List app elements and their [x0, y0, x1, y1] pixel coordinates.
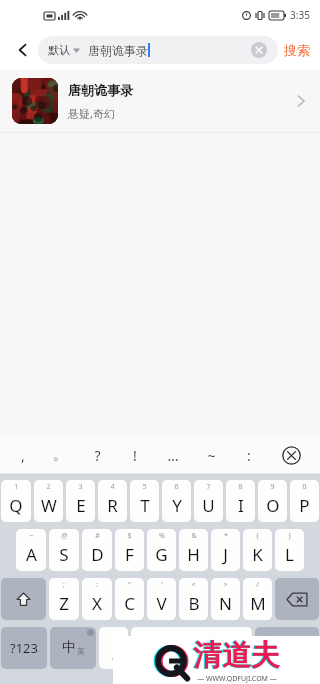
- staticText: H: [187, 543, 200, 566]
- staticText: R: [107, 494, 118, 517]
- button[interactable]: <: [179, 578, 208, 620]
- staticText: U: [202, 494, 215, 517]
- button[interactable]: 8: [226, 480, 255, 522]
- staticText: 道: [221, 637, 250, 674]
- staticText: 0: [302, 482, 307, 492]
- staticText: <: [191, 580, 196, 590]
- staticText: Q: [9, 494, 23, 517]
- staticText: 清: [193, 637, 222, 674]
- staticText: J: [223, 543, 228, 566]
- staticText: ,: [21, 446, 25, 465]
- button[interactable]: ': [147, 578, 176, 620]
- button[interactable]: *: [211, 529, 240, 571]
- button[interactable]: Space: [131, 627, 252, 669]
- button[interactable]: Shift: [1, 578, 46, 620]
- staticText: P: [299, 494, 310, 517]
- button[interactable]: ;: [49, 578, 79, 620]
- staticText: ': [161, 580, 163, 590]
- staticText: B: [188, 592, 200, 615]
- staticText: :: [247, 446, 251, 465]
- button[interactable]: 3: [66, 480, 95, 522]
- staticText: 悬疑,奇幻: [68, 106, 115, 121]
- staticText: I: [238, 494, 244, 517]
- staticText: V: [156, 592, 167, 615]
- button[interactable]: $: [115, 529, 144, 571]
- staticText: T: [140, 494, 150, 517]
- staticText: …: [167, 446, 179, 465]
- button[interactable]: /: [243, 578, 272, 620]
- button[interactable]: >: [211, 578, 240, 620]
- staticText: 夫: [250, 637, 279, 674]
- staticText: 3: [78, 482, 83, 492]
- button[interactable]: %: [147, 529, 176, 571]
- button[interactable]: 6: [162, 480, 191, 522]
- button[interactable]: …: [154, 436, 192, 474]
- staticText: 唐朝诡事录: [88, 43, 148, 58]
- button[interactable]: ?123: [1, 627, 47, 669]
- staticText: C: [124, 592, 135, 615]
- button[interactable]: 1: [1, 480, 31, 522]
- button[interactable]: @: [49, 529, 79, 571]
- staticText: 英: [77, 646, 85, 656]
- button[interactable]: ~: [192, 436, 230, 474]
- staticText: 4: [110, 482, 115, 492]
- staticText: 6: [174, 482, 179, 492]
- staticText: 。: [53, 446, 67, 464]
- button[interactable]: :: [82, 578, 112, 620]
- button[interactable]: Backspace: [275, 578, 319, 620]
- button[interactable]: Close keyboard: [268, 436, 314, 474]
- button[interactable]: 7: [194, 480, 223, 522]
- button[interactable]: ): [275, 529, 304, 571]
- button[interactable]: &: [179, 529, 208, 571]
- button[interactable]: Enter: [255, 627, 319, 669]
- staticText: S: [59, 543, 69, 566]
- staticText: Z: [59, 592, 69, 615]
- button[interactable]: 唐朝诡事录: [0, 70, 320, 133]
- staticText: @: [61, 531, 68, 541]
- staticText: ;: [63, 580, 65, 590]
- staticText: #: [95, 531, 100, 541]
- staticText: G: [155, 543, 168, 566]
- button[interactable]: 2: [34, 480, 63, 522]
- button[interactable]: 。: [41, 436, 78, 474]
- staticText: 夫: [251, 637, 280, 674]
- staticText: ?123: [10, 639, 38, 657]
- button[interactable]: 0: [290, 480, 319, 522]
- button[interactable]: ": [115, 578, 144, 620]
- staticText: O: [266, 494, 280, 517]
- button[interactable]: 5: [130, 480, 159, 522]
- button[interactable]: (: [243, 529, 272, 571]
- staticText: A: [26, 543, 37, 566]
- button[interactable]: #: [82, 529, 112, 571]
- staticText: D: [91, 543, 104, 566]
- button[interactable]: 搜索: [284, 42, 310, 58]
- staticText: K: [252, 543, 263, 566]
- staticText: F: [125, 543, 134, 566]
- button[interactable]: ~: [16, 529, 46, 571]
- button[interactable]: !: [116, 436, 154, 474]
- button[interactable]: ,: [4, 436, 41, 474]
- button[interactable]: 默认: [38, 36, 278, 64]
- staticText: N: [219, 592, 232, 615]
- staticText: 8: [238, 482, 243, 492]
- staticText: — WWW.QDFUJI.COM —: [197, 674, 277, 684]
- button[interactable]: 中: [50, 627, 96, 669]
- button[interactable]: :: [230, 436, 268, 474]
- staticText: %: [159, 531, 165, 541]
- button[interactable]: Clear: [250, 41, 268, 59]
- staticText: M: [250, 592, 266, 615]
- button[interactable]: ?: [78, 436, 116, 474]
- button[interactable]: !: [99, 627, 128, 669]
- staticText: 7: [206, 482, 211, 492]
- button[interactable]: Back: [8, 35, 38, 65]
- staticText: Y: [172, 494, 182, 517]
- staticText: /: [256, 580, 259, 590]
- button[interactable]: 4: [98, 480, 127, 522]
- staticText: 唐朝诡事录: [68, 82, 133, 98]
- staticText: $: [127, 531, 132, 541]
- staticText: 5: [142, 482, 147, 492]
- button[interactable]: 9: [258, 480, 287, 522]
- staticText: 清: [192, 637, 221, 674]
- staticText: 中: [62, 639, 76, 657]
